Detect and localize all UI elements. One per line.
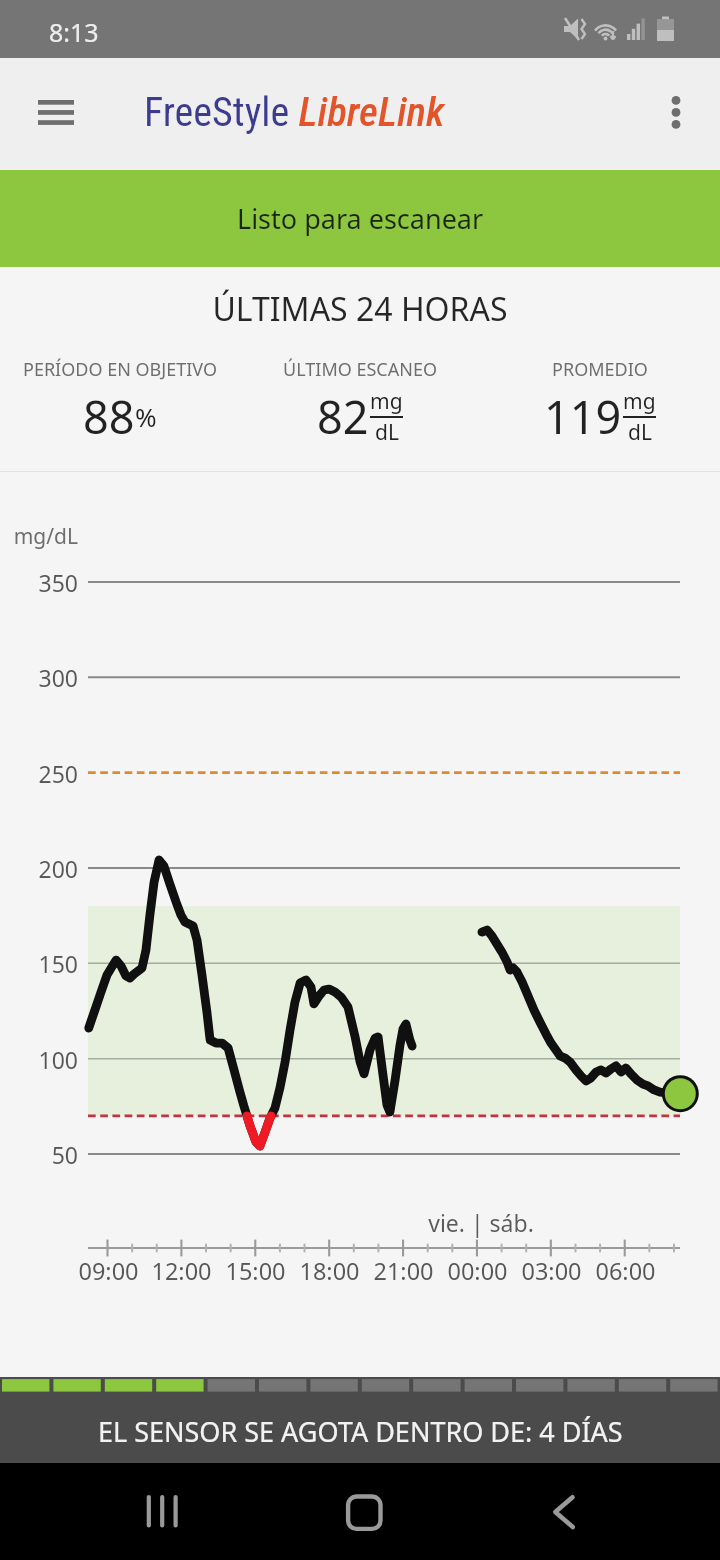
staticText: 119 bbox=[544, 386, 622, 447]
button[interactable]: PROMEDIO bbox=[480, 357, 720, 447]
staticText: 200 bbox=[38, 853, 78, 884]
staticText: 00:00 bbox=[447, 1255, 508, 1287]
staticText: 50 bbox=[51, 1139, 78, 1170]
staticText: 18:00 bbox=[299, 1255, 360, 1287]
staticText: 21:00 bbox=[373, 1255, 434, 1287]
staticText: 09:00 bbox=[78, 1255, 139, 1287]
button[interactable]: More options bbox=[634, 70, 718, 156]
staticText: 88 bbox=[83, 386, 135, 447]
staticText: ÚLTIMO ESCANEO bbox=[283, 357, 437, 382]
button[interactable]: EL SENSOR SE AGOTA DENTRO DE: 4 DÍAS bbox=[0, 1377, 720, 1463]
staticText: % bbox=[135, 399, 157, 434]
button[interactable]: Back bbox=[516, 1463, 612, 1560]
button[interactable]: PERÍODO EN OBJETIVO bbox=[0, 357, 240, 447]
button[interactable]: ÚLTIMO ESCANEO bbox=[240, 357, 480, 447]
button[interactable]: Listo para escanear bbox=[0, 170, 720, 267]
staticText: mg bbox=[623, 387, 656, 416]
staticText: ÚLTIMAS 24 HORAS bbox=[0, 287, 720, 331]
staticText: vie. | sáb. bbox=[428, 1207, 534, 1238]
button[interactable]: Home bbox=[315, 1463, 411, 1560]
staticText: FreeStyle LibreLink bbox=[144, 88, 445, 136]
staticText: 12:00 bbox=[151, 1255, 212, 1287]
staticText: EL SENSOR SE AGOTA DENTRO DE: 4 DÍAS bbox=[98, 1413, 623, 1450]
staticText: 8:13 bbox=[49, 15, 99, 49]
staticText: 06:00 bbox=[595, 1255, 656, 1287]
staticText: 03:00 bbox=[521, 1255, 582, 1287]
staticText: PROMEDIO bbox=[552, 357, 648, 382]
staticText: 82 bbox=[317, 386, 369, 447]
staticText: PERÍODO EN OBJETIVO bbox=[23, 357, 217, 382]
staticText: 350 bbox=[38, 567, 78, 598]
staticText: 300 bbox=[38, 662, 78, 693]
staticText: 100 bbox=[38, 1044, 78, 1075]
staticText: 15:00 bbox=[225, 1255, 286, 1287]
staticText: 150 bbox=[38, 948, 78, 979]
staticText: dL bbox=[628, 418, 652, 447]
staticText: Listo para escanear bbox=[237, 200, 484, 237]
button[interactable]: Recents bbox=[114, 1463, 210, 1560]
button[interactable]: Menu bbox=[14, 70, 98, 156]
staticText: dL bbox=[375, 418, 399, 447]
staticText: mg bbox=[370, 387, 403, 416]
staticText: 250 bbox=[38, 758, 78, 789]
staticText: mg/dL bbox=[13, 522, 78, 551]
